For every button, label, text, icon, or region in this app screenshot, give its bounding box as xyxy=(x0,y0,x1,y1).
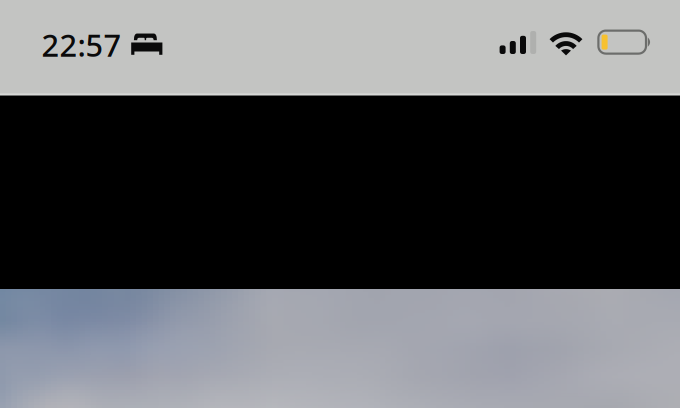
staticText: 22:57 xyxy=(41,25,121,65)
